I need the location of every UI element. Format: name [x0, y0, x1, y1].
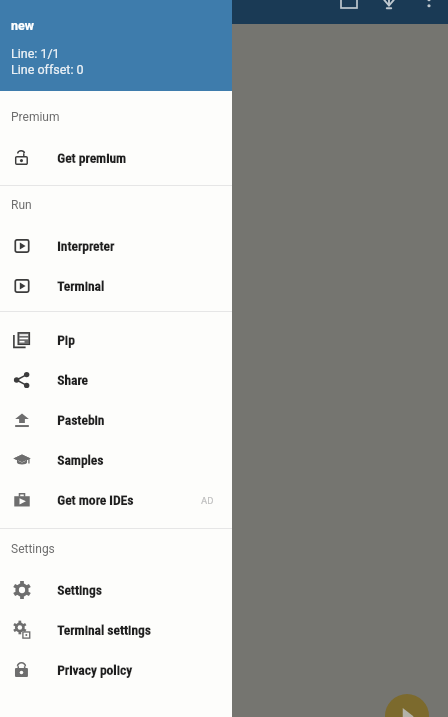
button[interactable]: Run — [385, 694, 429, 717]
button[interactable]: Privacy policy — [0, 650, 232, 690]
button[interactable]: New file — [329, 0, 369, 20]
staticText: AD — [201, 495, 214, 506]
button[interactable]: Get premium — [0, 138, 232, 178]
staticText: Settings — [11, 542, 55, 556]
button[interactable]: More options — [409, 0, 448, 20]
staticText: new — [11, 18, 34, 33]
staticText: Premium — [11, 110, 60, 124]
staticText: Get more IDEs — [57, 492, 134, 508]
staticText: Line offset: 0 — [11, 62, 84, 77]
staticText: Get premium — [57, 150, 126, 166]
button[interactable]: Terminal settings — [0, 610, 232, 650]
button[interactable]: Get more IDEs — [0, 480, 232, 520]
staticText: Privacy policy — [57, 662, 132, 678]
button[interactable]: Pastebin — [0, 400, 232, 440]
button[interactable]: Samples — [0, 440, 232, 480]
staticText: Pip — [57, 332, 75, 348]
staticText: Samples — [57, 452, 104, 468]
button[interactable]: Share — [0, 360, 232, 400]
staticText: Terminal settings — [57, 622, 151, 638]
staticText: Interpreter — [57, 238, 115, 254]
button[interactable]: Interpreter — [0, 226, 232, 266]
staticText: Pastebin — [57, 412, 105, 428]
staticText: Line: 1/1 — [11, 46, 60, 61]
button[interactable]: Terminal — [0, 266, 232, 306]
button[interactable]: Settings — [0, 570, 232, 610]
staticText: Share — [57, 372, 88, 388]
staticText: Terminal — [57, 278, 105, 294]
button[interactable]: Save file — [369, 0, 409, 20]
staticText: Run — [11, 198, 32, 212]
button[interactable]: Pip — [0, 320, 232, 360]
staticText: Settings — [57, 582, 102, 598]
